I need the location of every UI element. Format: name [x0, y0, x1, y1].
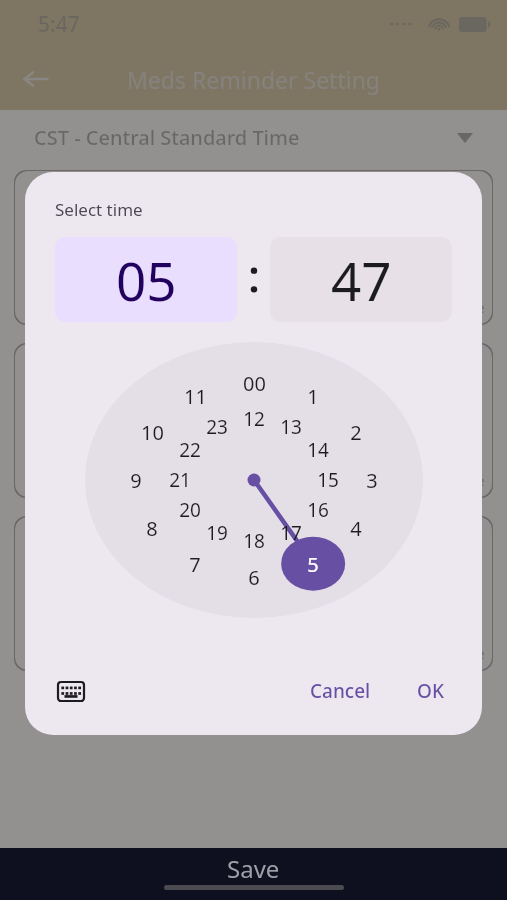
staticText: 11	[184, 383, 207, 410]
staticText: 18	[243, 528, 265, 554]
staticText: OK	[417, 678, 444, 704]
button[interactable]: 13	[25, 342, 482, 632]
button[interactable]: 5	[25, 342, 482, 632]
button[interactable]: 19	[25, 342, 482, 632]
staticText: 20	[179, 497, 201, 523]
staticText: 1	[307, 383, 319, 410]
button[interactable]: 4	[25, 342, 482, 632]
staticText: 00	[243, 370, 266, 397]
staticText: Time	[450, 470, 485, 490]
staticText: 22	[179, 437, 201, 463]
staticText: Save	[227, 852, 280, 885]
button[interactable]: 7	[25, 342, 482, 632]
button[interactable]: Back	[12, 55, 60, 103]
button[interactable]: CST - Central Standard Time	[0, 110, 507, 164]
button[interactable]: 2	[25, 342, 482, 632]
button[interactable]: 20	[25, 342, 482, 632]
button[interactable]: 17	[25, 342, 482, 632]
staticText: Meds Reminder Setting	[127, 64, 381, 95]
button[interactable]: 3	[25, 342, 482, 632]
staticText: 16	[307, 497, 329, 523]
button[interactable]: 15	[25, 342, 482, 632]
staticText: 05	[116, 244, 177, 316]
button[interactable]: Save	[0, 848, 507, 900]
staticText: 6	[248, 564, 260, 591]
button[interactable]: 12	[25, 342, 482, 632]
button[interactable]: 14	[25, 342, 482, 632]
button[interactable]: 22	[25, 342, 482, 632]
staticText: CST - Central Standard Time	[34, 124, 457, 151]
staticText: 7	[189, 551, 201, 578]
staticText: 10	[141, 419, 164, 446]
staticText: Select time	[55, 198, 143, 221]
button[interactable]: 11	[25, 342, 482, 632]
button[interactable]: 6	[25, 342, 482, 632]
button[interactable]: 23	[25, 342, 482, 632]
staticText: 13	[280, 414, 302, 440]
button[interactable]: Time	[14, 516, 493, 671]
button[interactable]: OK	[403, 669, 458, 713]
button[interactable]: 16	[25, 342, 482, 632]
button[interactable]: 1	[25, 342, 482, 632]
staticText: 47	[331, 244, 392, 316]
button[interactable]: Switch to text input	[49, 669, 93, 713]
staticText: 4	[350, 515, 362, 542]
staticText: 19	[206, 520, 228, 546]
staticText: 8	[146, 515, 158, 542]
staticText: 5	[307, 551, 319, 578]
button[interactable]: 05	[55, 237, 237, 322]
staticText: 2	[350, 419, 362, 446]
button[interactable]: 21	[25, 342, 482, 632]
button[interactable]: Cancel	[296, 669, 385, 713]
staticText: 17	[280, 520, 302, 546]
staticText: 21	[169, 467, 191, 493]
staticText: Time	[450, 643, 485, 663]
button[interactable]: Time	[14, 170, 493, 325]
staticText: Time	[450, 297, 485, 317]
button[interactable]: Time	[14, 343, 493, 498]
staticText: 3	[366, 467, 378, 494]
staticText: 12	[243, 406, 265, 432]
button[interactable]: 00	[25, 342, 482, 632]
staticText: 5:47	[38, 10, 80, 39]
staticText: 14	[307, 437, 329, 463]
staticText: 9	[130, 467, 142, 494]
staticText: 15	[317, 467, 339, 493]
staticText: Cancel	[310, 678, 371, 704]
staticText: 23	[206, 414, 228, 440]
button[interactable]: 47	[270, 237, 452, 322]
button[interactable]: 10	[25, 342, 482, 632]
button[interactable]: 9	[25, 342, 482, 632]
button[interactable]: 18	[25, 342, 482, 632]
button[interactable]: 8	[25, 342, 482, 632]
